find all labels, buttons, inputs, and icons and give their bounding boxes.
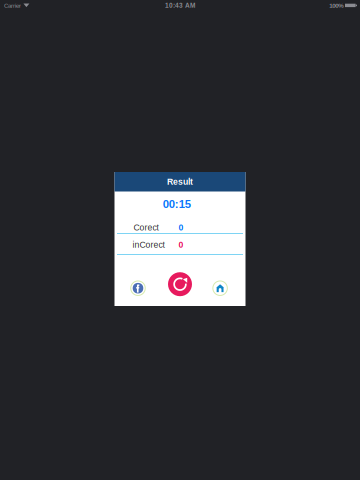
staticText: 00:15 xyxy=(163,198,191,210)
staticText: Result xyxy=(167,177,193,187)
staticText: 0 xyxy=(178,240,183,250)
button[interactable]: Home xyxy=(210,278,230,298)
staticText: 100% xyxy=(329,2,343,9)
staticText: 0 xyxy=(178,223,183,232)
staticText: Carrier xyxy=(4,2,21,9)
staticText: 10:43 AM xyxy=(165,2,195,9)
staticText: Corect xyxy=(133,223,158,232)
staticText: inCorect xyxy=(132,240,164,250)
button[interactable]: Share on Facebook xyxy=(128,278,148,298)
button[interactable]: Restart xyxy=(167,271,193,297)
